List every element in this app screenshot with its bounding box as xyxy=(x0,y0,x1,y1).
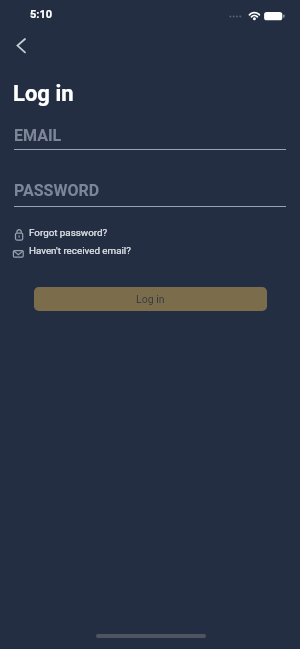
staticText: EMAIL xyxy=(14,126,62,145)
staticText: Haven't received email? xyxy=(29,245,131,256)
staticText: Log in xyxy=(136,293,165,305)
button[interactable]: Haven't received email? xyxy=(12,243,182,261)
button[interactable]: EMAIL xyxy=(13,124,286,151)
button[interactable]: Forgot password? xyxy=(12,225,162,243)
staticText: Log in xyxy=(13,81,74,107)
button[interactable]: Log in xyxy=(34,287,267,311)
staticText: PASSWORD xyxy=(14,181,100,200)
staticText: Forgot password? xyxy=(29,227,108,238)
button[interactable] xyxy=(2,31,38,61)
staticText: 5:10 xyxy=(30,8,53,21)
button[interactable]: PASSWORD xyxy=(13,179,286,208)
